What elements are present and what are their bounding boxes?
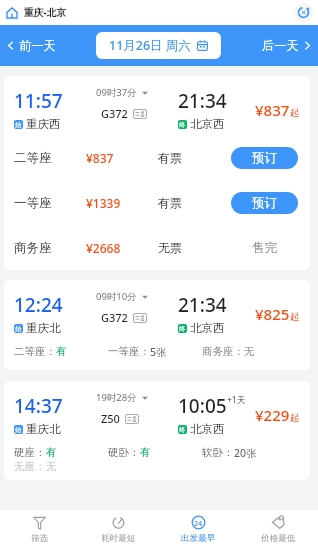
- staticText: 重庆北: [26, 321, 61, 335]
- button[interactable]: 12:24: [4, 280, 310, 370]
- staticText: 有: [46, 446, 57, 459]
- staticText: 硬座：: [14, 446, 46, 459]
- staticText: 09时10分: [96, 290, 137, 303]
- staticText: 重庆-北京: [24, 6, 67, 19]
- staticText: G372: [101, 106, 128, 121]
- staticText: 软卧：: [202, 446, 234, 459]
- staticText: ¥2668: [86, 240, 158, 256]
- staticText: 09时37分: [96, 86, 137, 99]
- staticText: ¥229: [255, 405, 290, 425]
- staticText: ¥837: [255, 100, 290, 120]
- staticText: Z50: [101, 411, 120, 426]
- staticText: 11:57: [14, 88, 63, 114]
- staticText: 价格最低: [261, 533, 296, 544]
- staticText: 19时28分: [96, 391, 137, 404]
- staticText: 北京西: [190, 117, 225, 131]
- button[interactable]: 11:57: [4, 76, 310, 270]
- staticText: 一等座：: [108, 345, 150, 358]
- button[interactable]: 预订: [231, 147, 298, 169]
- staticText: 商务座：: [202, 345, 244, 358]
- button[interactable]: Refresh: [294, 3, 313, 22]
- button[interactable]: 后一天: [258, 34, 316, 57]
- staticText: 无: [244, 345, 255, 358]
- staticText: 一等座: [14, 195, 86, 211]
- button[interactable]: 筛选: [0, 510, 79, 548]
- staticText: 24: [194, 518, 203, 528]
- staticText: 21:34: [178, 88, 227, 114]
- staticText: 11月26日 周六: [109, 37, 191, 54]
- staticText: 有: [56, 345, 67, 358]
- staticText: 预订: [252, 195, 277, 211]
- staticText: 12:24: [14, 292, 63, 318]
- staticText: 筛选: [31, 533, 49, 544]
- staticText: 无座：: [14, 460, 46, 473]
- button[interactable]: 11月26日 周六: [96, 32, 221, 59]
- staticText: 21:34: [178, 292, 227, 318]
- staticText: 始: [15, 426, 22, 434]
- staticText: 预订: [252, 150, 277, 166]
- staticText: ¥825: [255, 304, 290, 324]
- button[interactable]: 售完: [231, 237, 298, 259]
- button[interactable]: 价格最低: [238, 510, 318, 548]
- staticText: G372: [101, 310, 128, 325]
- staticText: 20张: [234, 446, 257, 460]
- staticText: 始: [15, 121, 22, 129]
- button[interactable]: 前一天: [2, 34, 60, 57]
- staticText: 后一天: [262, 38, 299, 53]
- button[interactable]: 预订: [231, 192, 298, 214]
- button[interactable]: 24: [158, 510, 238, 548]
- staticText: 起: [290, 311, 300, 323]
- staticText: 前一天: [19, 38, 56, 53]
- staticText: ¥1339: [86, 195, 158, 211]
- staticText: 终: [179, 325, 186, 333]
- staticText: 终: [179, 121, 186, 129]
- staticText: 耗时最短: [101, 533, 136, 544]
- staticText: 北京西: [190, 321, 225, 335]
- staticText: 始: [15, 325, 22, 333]
- staticText: 有票: [158, 195, 231, 210]
- staticText: 有: [140, 446, 151, 459]
- button[interactable]: 耗时最短: [79, 510, 158, 548]
- staticText: 商务座: [14, 240, 86, 256]
- staticText: 二等座: [14, 150, 86, 166]
- button[interactable]: 14:37: [4, 381, 310, 480]
- staticText: 5张: [150, 345, 167, 359]
- staticText: 起: [290, 107, 300, 119]
- staticText: 终: [179, 426, 186, 434]
- staticText: 硬卧：: [108, 446, 140, 459]
- staticText: 14:37: [14, 393, 63, 419]
- staticText: 二等座：: [14, 345, 56, 358]
- staticText: 无票: [158, 240, 231, 255]
- staticText: 无: [46, 460, 57, 473]
- staticText: 起: [290, 412, 300, 424]
- staticText: 有票: [158, 150, 231, 165]
- staticText: 重庆西: [26, 117, 61, 131]
- button[interactable]: Home: [3, 4, 21, 22]
- staticText: 北京西: [190, 422, 225, 436]
- staticText: 售完: [252, 240, 277, 256]
- staticText: 10:05: [178, 393, 227, 419]
- staticText: +1天: [227, 394, 246, 406]
- staticText: 出发最早: [181, 533, 216, 544]
- staticText: 重庆北: [26, 422, 61, 436]
- staticText: ¥837: [86, 150, 158, 166]
